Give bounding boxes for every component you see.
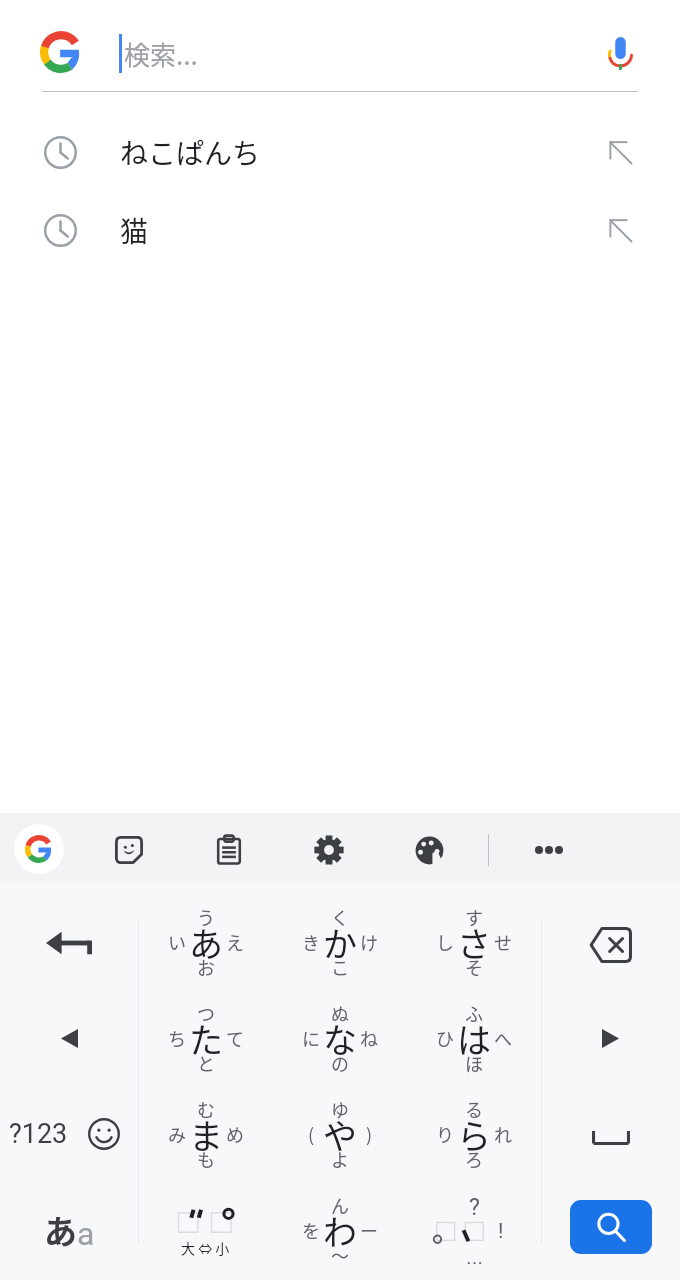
- staticText: ち: [168, 1025, 186, 1051]
- staticText: つ: [197, 1000, 215, 1026]
- staticText: す: [465, 904, 483, 930]
- staticText: や: [323, 1110, 357, 1159]
- staticText: り: [436, 1121, 454, 1147]
- staticText: し: [436, 929, 454, 955]
- button[interactable]: Clipboard: [203, 824, 255, 876]
- staticText: 〜: [331, 1242, 349, 1268]
- staticText: き: [302, 929, 320, 955]
- button[interactable]: ?: [407, 1182, 541, 1278]
- staticText: け: [360, 929, 378, 955]
- button[interactable]: ?123: [0, 1086, 68, 1182]
- staticText: ぬ: [331, 1000, 349, 1026]
- staticText: め: [226, 1121, 244, 1147]
- staticText: ろ: [465, 1146, 483, 1172]
- staticText: る: [465, 1096, 483, 1122]
- staticText: く: [331, 904, 349, 930]
- staticText: へ: [494, 1025, 512, 1051]
- staticText: う: [197, 904, 215, 930]
- staticText: …: [466, 1250, 483, 1275]
- button[interactable]: ら: [407, 1086, 541, 1182]
- staticText: ま: [189, 1110, 223, 1159]
- staticText: ゆ: [331, 1096, 349, 1122]
- button[interactable]: Voice search: [584, 17, 656, 89]
- button[interactable]: Backspace: [541, 894, 680, 990]
- button[interactable]: More options: [525, 826, 573, 874]
- button[interactable]: や: [273, 1086, 407, 1182]
- staticText: か: [323, 918, 357, 967]
- staticText: 大 ⇔ 小: [181, 1238, 230, 1258]
- staticText: い: [168, 929, 186, 955]
- staticText: の: [331, 1050, 349, 1076]
- button[interactable]: Themes: [403, 824, 455, 876]
- staticText: れ: [494, 1121, 512, 1147]
- staticText: お: [197, 954, 215, 980]
- button[interactable]: わ: [273, 1182, 407, 1278]
- staticText: み: [168, 1121, 186, 1147]
- staticText: は: [457, 1014, 491, 1063]
- staticText: え: [226, 929, 244, 955]
- staticText: ): [366, 1121, 373, 1147]
- button[interactable]: Space: [541, 1086, 680, 1182]
- staticText: ん: [331, 1192, 349, 1218]
- staticText: な: [323, 1014, 357, 1063]
- button[interactable]: か: [273, 894, 407, 990]
- staticText: あ: [189, 918, 223, 967]
- staticText: と: [197, 1050, 215, 1076]
- staticText: ふ: [465, 1000, 483, 1026]
- staticText: も: [197, 1146, 215, 1172]
- button[interactable]: な: [273, 990, 407, 1086]
- staticText: さ: [457, 918, 491, 967]
- staticText: a: [77, 1215, 95, 1253]
- button[interactable]: ま: [138, 1086, 273, 1182]
- staticText: ほ: [465, 1050, 483, 1076]
- button[interactable]: 猫: [0, 191, 680, 269]
- staticText: あ: [44, 1206, 77, 1254]
- staticText: こ: [331, 954, 349, 980]
- button[interactable]: Insert suggestion: [589, 121, 651, 183]
- staticText: た: [189, 1014, 223, 1063]
- staticText: よ: [331, 1146, 349, 1172]
- button[interactable]: Move cursor left: [0, 990, 138, 1086]
- staticText: ね: [360, 1025, 378, 1051]
- button[interactable]: ねこぱんち: [0, 113, 680, 191]
- staticText: を: [302, 1217, 320, 1243]
- staticText: に: [302, 1025, 320, 1051]
- button[interactable]: Move cursor right: [541, 990, 680, 1086]
- staticText: ?123: [9, 1118, 68, 1150]
- button[interactable]: は: [407, 990, 541, 1086]
- staticText: て: [226, 1025, 244, 1051]
- button[interactable]: た: [138, 990, 273, 1086]
- staticText: ?: [469, 1194, 480, 1221]
- staticText: ひ: [436, 1025, 454, 1051]
- staticText: ら: [457, 1110, 491, 1159]
- button[interactable]: Search: [570, 1200, 652, 1254]
- staticText: ー: [360, 1217, 378, 1243]
- staticText: む: [197, 1096, 215, 1122]
- staticText: (: [308, 1121, 315, 1147]
- staticText: 猫: [120, 210, 149, 251]
- button[interactable]: さ: [407, 894, 541, 990]
- button[interactable]: Google: [25, 16, 97, 88]
- staticText: !: [498, 1219, 504, 1244]
- button[interactable]: 検索...: [124, 35, 198, 73]
- staticText: そ: [465, 954, 483, 980]
- button[interactable]: Emoji: [68, 1086, 134, 1182]
- button[interactable]: Google: [14, 824, 64, 874]
- button[interactable]: Undo: [0, 894, 138, 990]
- button[interactable]: あ: [138, 894, 273, 990]
- staticText: わ: [323, 1206, 357, 1255]
- button[interactable]: 大 ⇔ 小: [138, 1182, 273, 1278]
- staticText: ねこぱんち: [120, 132, 261, 173]
- button[interactable]: Switch input mode: [0, 1182, 138, 1278]
- button[interactable]: Settings: [303, 824, 355, 876]
- staticText: せ: [494, 929, 512, 955]
- button[interactable]: Stickers: [103, 824, 155, 876]
- button[interactable]: Insert suggestion: [589, 199, 651, 261]
